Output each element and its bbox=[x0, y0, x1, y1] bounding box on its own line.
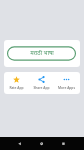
button[interactable]: Back bbox=[13, 137, 27, 150]
staticText: Share App bbox=[33, 85, 50, 89]
button[interactable]: Recents bbox=[56, 137, 70, 150]
staticText: Rate App bbox=[9, 85, 24, 89]
button[interactable]: मराठी भाषा bbox=[7, 46, 76, 60]
staticText: More Apps bbox=[58, 85, 75, 89]
button[interactable]: Rate App bbox=[4, 72, 29, 94]
button[interactable]: More Apps bbox=[54, 72, 79, 94]
button[interactable]: Home bbox=[35, 137, 49, 150]
staticText: मराठी भाषा bbox=[30, 49, 54, 57]
button[interactable]: Share App bbox=[29, 72, 54, 94]
